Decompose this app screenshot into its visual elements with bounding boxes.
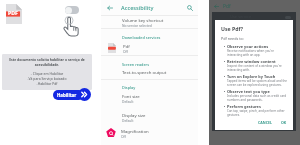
staticText: Screen readers <box>122 62 150 67</box>
staticText: Pdf <box>123 43 130 49</box>
staticText: Off <box>121 134 126 138</box>
button[interactable]: Back <box>105 3 114 12</box>
button[interactable]: Display size <box>101 112 198 123</box>
button[interactable]: Search <box>185 3 194 12</box>
staticText: CANCEL <box>258 120 273 125</box>
staticText: Display <box>122 85 136 90</box>
staticText: -Vá para Serviço baixado <box>8 76 86 81</box>
staticText: Display size <box>122 112 146 118</box>
staticText: Este documento solicita habilitar o serv… <box>8 57 86 67</box>
staticText: Default <box>122 118 134 122</box>
staticText: Observe text you type <box>227 89 270 94</box>
staticText: Habilitar <box>57 92 77 98</box>
staticText: Turn on Explore by Touch <box>227 74 276 79</box>
staticText: Perform gestures <box>227 104 261 109</box>
staticText: PDF <box>8 9 18 16</box>
staticText: Receive notifications when you're intera… <box>227 49 289 57</box>
button[interactable]: CANCEL <box>256 119 275 126</box>
staticText: Inspect the content of a window you're i… <box>227 64 289 72</box>
staticText: OK <box>281 120 287 125</box>
button[interactable]: Pdf <box>101 42 198 54</box>
staticText: Tapped items will be spoken aloud and th… <box>227 79 289 87</box>
button[interactable]: Font size <box>101 93 198 104</box>
staticText: Accessibility <box>121 4 154 12</box>
staticText: Font size <box>122 93 140 99</box>
staticText: No service selected <box>122 23 152 27</box>
staticText: Use Pdf? <box>221 25 243 32</box>
staticText: -Habilitar Pdf <box>8 81 86 86</box>
staticText: Text-to-speech output <box>122 69 167 75</box>
staticText: Default <box>122 99 134 103</box>
button[interactable]: Magnification <box>101 126 198 139</box>
staticText: Pdf needs to: <box>221 36 244 41</box>
staticText: Observe your actions <box>227 44 269 49</box>
button[interactable]: Accessibility toggle <box>65 6 79 14</box>
staticText: Off <box>123 49 128 53</box>
staticText: Retrieve window content <box>227 59 276 64</box>
staticText: Pdf <box>223 3 231 10</box>
staticText: Downloaded services <box>122 35 161 40</box>
staticText: Volume key shortcut <box>122 17 164 23</box>
staticText: Magnification <box>121 128 149 134</box>
button[interactable]: Volume key shortcut <box>101 17 198 28</box>
button[interactable]: OK <box>279 119 289 126</box>
staticText: - Clique em Habilitar <box>8 71 86 76</box>
staticText: Includes personal data such as credit ca… <box>227 94 289 102</box>
staticText: Can tap, swipe, pinch, and perform other… <box>227 109 289 117</box>
button[interactable]: Habilitar <box>53 88 91 101</box>
